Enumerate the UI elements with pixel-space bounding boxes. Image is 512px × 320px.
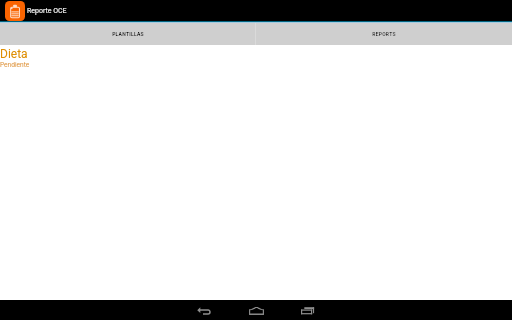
staticText: Dieta — [0, 47, 28, 61]
staticText: REPORTS — [372, 31, 396, 37]
staticText: Reporte OCE — [27, 7, 67, 15]
staticText: Pendiente — [0, 61, 30, 69]
button[interactable]: Dieta — [0, 45, 512, 67]
button[interactable]: Home — [243, 301, 269, 320]
button[interactable]: Reporte OCE — [5, 1, 25, 21]
button[interactable]: PLANTILLAS — [0, 23, 255, 45]
staticText: PLANTILLAS — [112, 31, 144, 37]
button[interactable]: Recent apps — [294, 301, 320, 320]
button[interactable]: Back — [191, 301, 217, 320]
button[interactable]: REPORTS — [256, 23, 512, 45]
